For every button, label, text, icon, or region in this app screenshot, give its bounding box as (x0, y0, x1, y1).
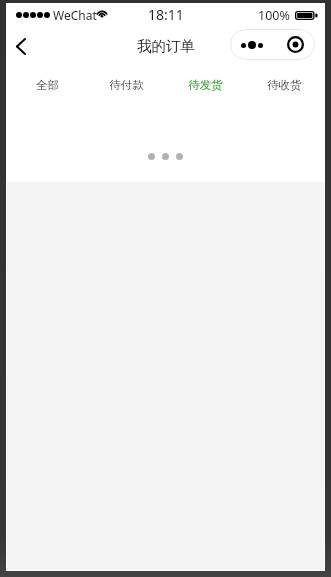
button[interactable]: 全部 (7, 64, 87, 105)
staticText: 我的订单 (137, 37, 195, 55)
staticText: 100% (258, 7, 290, 24)
staticText: 待收货 (267, 78, 302, 92)
staticText: 18:11 (148, 5, 184, 24)
button[interactable]: 待发货 (166, 64, 245, 105)
staticText: 待付款 (109, 78, 144, 92)
button[interactable]: Menu (230, 29, 315, 60)
button[interactable]: 待收货 (245, 64, 324, 105)
button[interactable]: Back (7, 31, 37, 61)
staticText: 待发货 (188, 78, 223, 92)
button[interactable]: 待付款 (87, 64, 166, 105)
staticText: WeChat (53, 7, 97, 23)
staticText: 全部 (36, 78, 59, 92)
